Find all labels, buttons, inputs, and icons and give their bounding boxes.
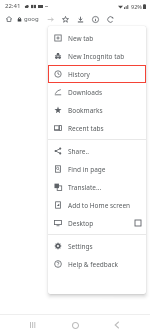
- button[interactable]: Recents: [24, 316, 42, 334]
- staticText: 92%: [131, 3, 142, 10]
- staticText: New Incognito tab: [68, 52, 125, 61]
- button[interactable]: Help & feedback: [48, 255, 146, 273]
- button[interactable]: Settings: [48, 237, 146, 255]
- button[interactable]: Page info: [90, 14, 101, 25]
- button[interactable]: Home: [66, 316, 84, 334]
- staticText: Downloads: [68, 88, 103, 97]
- button[interactable]: Forward: [45, 14, 56, 25]
- staticText: Bookmarks: [68, 106, 103, 115]
- button[interactable]: Bookmark: [60, 14, 71, 25]
- staticText: History: [68, 70, 90, 79]
- button[interactable]: New Incognito tab: [48, 47, 146, 65]
- button[interactable]: Reload: [105, 14, 116, 25]
- button[interactable]: Home: [4, 14, 14, 24]
- staticText: Find in page: [68, 165, 106, 174]
- button[interactable]: Recent tabs: [48, 119, 146, 137]
- staticText: goog: [24, 15, 39, 23]
- button[interactable]: Share..: [48, 142, 146, 160]
- staticText: Share..: [68, 147, 89, 156]
- button[interactable]: New tab: [48, 29, 146, 47]
- button[interactable]: Translate...: [48, 178, 146, 196]
- button[interactable]: Bookmarks: [48, 101, 146, 119]
- staticText: New tab: [68, 34, 94, 43]
- staticText: Translate...: [68, 183, 102, 192]
- staticText: Help & feedback: [68, 260, 119, 269]
- staticText: Add to Home screen: [68, 201, 131, 210]
- staticText: Settings: [68, 242, 93, 251]
- staticText: Recent tabs: [68, 124, 104, 133]
- button[interactable]: Download: [75, 14, 86, 25]
- button[interactable]: History: [48, 65, 146, 83]
- button[interactable]: Add to Home screen: [48, 196, 146, 214]
- button[interactable]: Desktop site: [48, 214, 146, 232]
- staticText: 22:41: [5, 2, 21, 10]
- staticText: Desktop site: [68, 219, 101, 228]
- button[interactable]: Downloads: [48, 83, 146, 101]
- button[interactable]: Back: [108, 316, 126, 334]
- button[interactable]: Find in page: [48, 160, 146, 178]
